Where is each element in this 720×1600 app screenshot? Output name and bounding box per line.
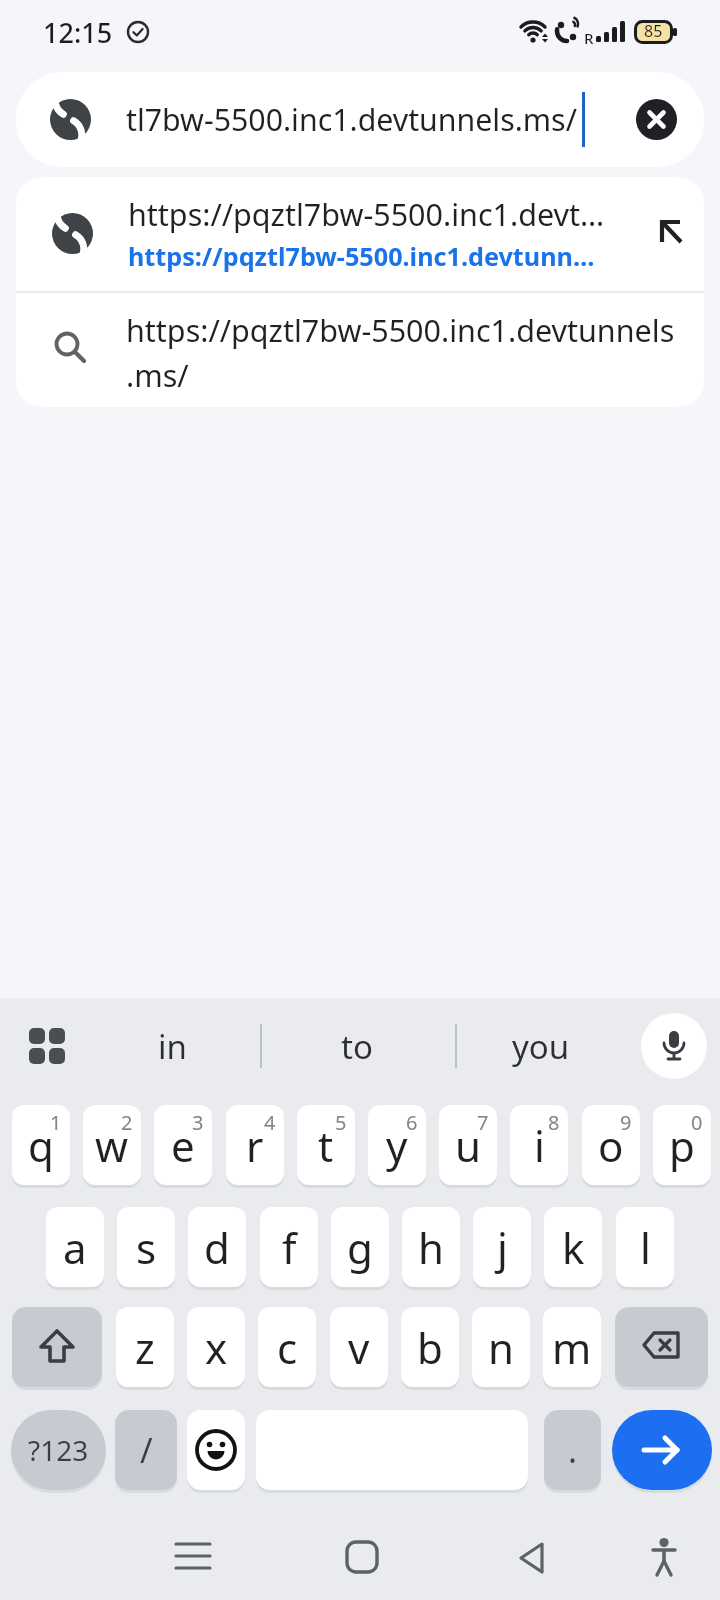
staticText: n [488,1319,514,1376]
button[interactable]: j [473,1207,531,1287]
button[interactable] [612,1410,712,1490]
button[interactable]: z [116,1307,174,1387]
button[interactable]: . [544,1410,601,1490]
button[interactable]: h [402,1207,460,1287]
staticText: 3 [192,1109,204,1136]
staticText: https://pqztl7bw-5500.inc1.devtunnels [126,309,675,351]
staticText: 9 [620,1109,632,1136]
button[interactable]: https://pqztl7bw-5500.inc1.devtunnels [16,292,704,407]
staticText: q [28,1117,54,1174]
staticText: 7 [477,1109,489,1136]
staticText: 5 [335,1109,347,1136]
staticText: in [158,1024,187,1069]
staticText: 4 [264,1109,276,1136]
button[interactable]: y [368,1105,426,1185]
staticText: tl7bw-5500.inc1.devtunnels.ms/ [126,99,577,140]
button[interactable]: https://pqztl7bw-5500.inc1.devt… [16,177,704,291]
button[interactable]: l [616,1207,674,1287]
button[interactable]: a [46,1207,104,1287]
staticText: y [386,1117,408,1174]
button[interactable]: q [12,1105,70,1185]
staticText: z [135,1319,155,1376]
staticText: 1 [50,1109,62,1136]
staticText: m [552,1319,592,1376]
staticText: x [205,1319,228,1376]
staticText: i [534,1117,545,1174]
button[interactable]: w [83,1105,141,1185]
button[interactable] [20,1013,74,1079]
staticText: s [136,1219,157,1276]
staticText: r [246,1117,264,1174]
staticText: https://pqztl7bw-5500.inc1.devtunn… [128,239,595,273]
button[interactable]: / [115,1410,177,1490]
staticText: 85 [644,20,663,42]
staticText: / [140,1427,153,1473]
button[interactable]: p [653,1105,711,1185]
button[interactable]: m [543,1307,601,1387]
button[interactable]: x [187,1307,245,1387]
button[interactable]: b [401,1307,459,1387]
staticText: https://pqztl7bw-5500.inc1.devt… [128,193,605,235]
button[interactable]: s [117,1207,175,1287]
staticText: 8 [548,1109,560,1136]
button[interactable]: o [582,1105,640,1185]
staticText: u [455,1117,481,1174]
staticText: j [497,1219,508,1276]
staticText: k [562,1219,585,1276]
staticText: l [640,1219,651,1276]
staticText: h [418,1219,444,1276]
staticText: v [348,1319,370,1376]
staticText: o [598,1117,624,1174]
button[interactable]: r [226,1105,284,1185]
button[interactable]: u [439,1105,497,1185]
staticText: e [171,1117,195,1174]
staticText: .ms/ [126,354,189,396]
button[interactable]: t [297,1105,355,1185]
staticText: 2 [121,1109,133,1136]
staticText: you [512,1024,570,1069]
staticText: w [95,1117,129,1174]
button[interactable]: g [331,1207,389,1287]
staticText: p [669,1117,695,1174]
button[interactable] [615,1307,708,1387]
button[interactable] [636,99,677,140]
button[interactable]: f [260,1207,318,1287]
staticText: d [204,1219,230,1276]
button[interactable]: i [510,1105,568,1185]
button[interactable]: tl7bw-5500.inc1.devtunnels.ms/ [16,72,704,167]
staticText: 0 [691,1109,703,1136]
button[interactable] [642,1536,686,1580]
button[interactable]: ?123 [11,1410,106,1490]
staticText: a [63,1219,87,1276]
button[interactable]: n [472,1307,530,1387]
staticText: g [347,1219,373,1276]
button[interactable]: d [188,1207,246,1287]
staticText: f [282,1219,297,1276]
button[interactable]: k [544,1207,602,1287]
button[interactable] [187,1410,245,1490]
button[interactable]: c [258,1307,316,1387]
staticText: c [277,1319,298,1376]
staticText: R [584,28,594,48]
button[interactable]: e [154,1105,212,1185]
button[interactable] [12,1307,102,1387]
staticText: . [568,1427,578,1473]
button[interactable] [641,1013,707,1079]
button[interactable] [171,1535,215,1579]
button[interactable]: v [330,1307,388,1387]
staticText: b [417,1319,443,1376]
staticText: 6 [406,1109,418,1136]
button[interactable] [511,1536,555,1580]
staticText: to [341,1024,373,1069]
staticText: ?123 [28,1431,89,1469]
staticText: 12:15 [43,14,113,51]
staticText: t [318,1117,334,1174]
button[interactable] [340,1535,384,1579]
